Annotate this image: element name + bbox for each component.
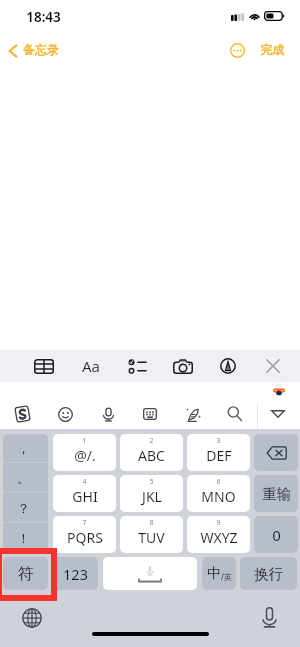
button[interactable]: Emoji [49, 399, 81, 429]
staticText: WXYZ [200, 528, 238, 547]
staticText: PQRS [67, 528, 103, 547]
staticText: MNO [201, 487, 236, 506]
button[interactable]: MNO [187, 475, 250, 512]
staticText: 18:43 [26, 8, 61, 26]
button[interactable]: Search [218, 398, 250, 428]
button[interactable]: Checklist [123, 351, 151, 381]
staticText: 5 [149, 477, 154, 487]
staticText: GHI [72, 487, 98, 506]
button[interactable]: Camera [169, 351, 197, 381]
button[interactable]: GHI [53, 475, 116, 512]
button[interactable]: Text format [77, 351, 105, 381]
staticText: 8 [149, 518, 154, 528]
button[interactable]: DEF [187, 434, 250, 471]
button[interactable]: ABC [120, 434, 183, 471]
button[interactable]: 符 [3, 557, 48, 590]
button[interactable]: 中英 [202, 557, 236, 590]
button[interactable]: ！ [3, 523, 48, 552]
staticText: 6 [216, 477, 221, 487]
staticText: ！ [17, 530, 30, 546]
button[interactable]: 重输 [254, 475, 298, 512]
button[interactable]: @/. [53, 434, 116, 471]
staticText: /英 [221, 571, 232, 582]
staticText: 0 [272, 525, 281, 545]
button[interactable]: Space [103, 557, 197, 590]
button[interactable]: Dictate [255, 603, 284, 632]
button[interactable]: Sogou input [6, 399, 38, 429]
staticText: 4 [82, 477, 87, 487]
staticText: 备忘录 [23, 43, 59, 58]
button[interactable]: Collapse keyboard [262, 399, 294, 429]
button[interactable]: ， [3, 434, 48, 462]
button[interactable]: Table [30, 351, 58, 381]
button[interactable]: 。 [3, 463, 48, 492]
staticText: Aa [82, 356, 101, 376]
staticText: 符 [18, 564, 34, 584]
button[interactable]: Handwriting [177, 399, 209, 429]
staticText: 9 [216, 518, 221, 528]
button[interactable]: 备忘录 [7, 43, 59, 58]
button[interactable]: TUV [120, 516, 183, 553]
staticText: ？ [17, 500, 30, 516]
button[interactable]: Markup [214, 351, 242, 381]
staticText: JKL [142, 487, 162, 506]
button[interactable]: Close keyboard [259, 351, 287, 381]
staticText: ABC [138, 446, 165, 465]
staticText: 7 [82, 518, 87, 528]
button[interactable]: 换行 [240, 557, 297, 590]
button[interactable]: WXYZ [187, 516, 250, 553]
staticText: DEF [206, 446, 232, 465]
button[interactable]: Change language [17, 603, 46, 632]
button[interactable]: JKL [120, 475, 183, 512]
staticText: 3 [216, 436, 221, 446]
button[interactable]: More options [230, 43, 245, 58]
staticText: ， [17, 440, 30, 456]
staticText: 重输 [262, 485, 291, 503]
button[interactable]: PQRS [53, 516, 116, 553]
staticText: 中 [207, 565, 221, 583]
staticText: 1 [82, 436, 87, 446]
button[interactable]: 完成 [260, 43, 284, 58]
button[interactable]: ？ [3, 493, 48, 522]
staticText: 完成 [260, 43, 284, 58]
button[interactable]: 0 [254, 516, 298, 553]
staticText: 换行 [254, 565, 283, 583]
staticText: @/. [74, 446, 96, 465]
staticText: TUV [138, 528, 165, 547]
button[interactable]: Keyboard layout [134, 399, 166, 429]
staticText: 。 [17, 470, 30, 486]
button[interactable]: 123 [53, 557, 98, 590]
button[interactable]: Voice input [92, 399, 124, 429]
button[interactable]: Delete [254, 434, 298, 471]
staticText: 2 [149, 436, 154, 446]
staticText: 123 [63, 564, 88, 584]
